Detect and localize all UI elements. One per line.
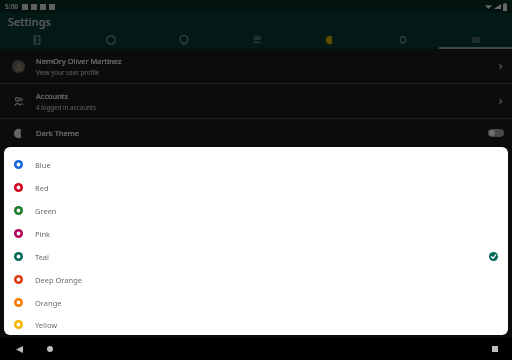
staticText: Blue	[35, 160, 51, 170]
button[interactable]: Docs	[0, 30, 74, 49]
staticText: Accounts	[36, 91, 69, 101]
button[interactable]: Pink	[4, 222, 508, 245]
button[interactable]: Dark Theme toggle	[488, 129, 504, 137]
button[interactable]: Blue	[4, 153, 508, 176]
button[interactable]: Green	[4, 199, 508, 222]
staticText: View your user profile	[36, 68, 100, 76]
staticText: NemOry Oliver Martinez	[36, 56, 122, 66]
staticText: Settings	[8, 14, 51, 29]
staticText: Green	[35, 206, 57, 216]
staticText: Teal	[35, 252, 50, 262]
other: Open	[497, 98, 504, 105]
button[interactable]: Home	[47, 346, 53, 352]
staticText: 4 logged in accounts	[36, 103, 97, 111]
button[interactable]: Theme	[293, 30, 366, 49]
button[interactable]: People	[220, 30, 293, 49]
button[interactable]: Circle	[74, 30, 147, 49]
staticText: 5:00	[5, 2, 18, 11]
staticText: Dark Theme	[36, 128, 80, 138]
staticText: Yellow	[35, 320, 58, 330]
button[interactable]: Red	[4, 176, 508, 199]
staticText: Red	[35, 183, 49, 193]
button[interactable]: Menu	[439, 30, 512, 49]
staticText: Orange	[35, 298, 62, 308]
button[interactable]: Dark Theme	[0, 119, 512, 147]
button[interactable]: Notifications	[366, 30, 439, 49]
staticText: Pink	[35, 229, 51, 239]
button[interactable]: Yellow	[4, 314, 508, 335]
button[interactable]: Orange	[4, 291, 508, 314]
button[interactable]: Teal	[4, 245, 508, 268]
other: Open	[497, 63, 504, 70]
button[interactable]: NemOry Oliver Martinez	[0, 49, 512, 83]
button[interactable]: Chat	[147, 30, 220, 49]
staticText: Deep Orange	[35, 275, 82, 285]
button[interactable]: Deep Orange	[4, 268, 508, 291]
button[interactable]: Accounts	[0, 84, 512, 118]
button[interactable]: Back	[16, 346, 23, 353]
